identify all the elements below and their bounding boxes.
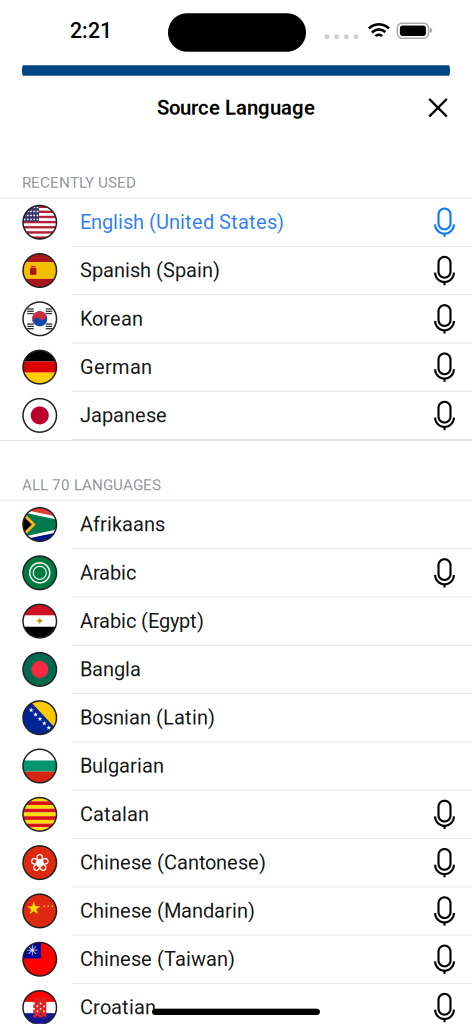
staticText: ✳ xyxy=(26,942,38,959)
staticText: RECENTLY USED xyxy=(22,174,136,192)
button[interactable]: Arabic xyxy=(0,549,472,597)
button[interactable]: ▓ xyxy=(0,984,472,1024)
staticText: Chinese (Taiwan) xyxy=(80,947,235,971)
staticText: Spanish (Spain) xyxy=(80,259,220,282)
button[interactable]: English (United States) xyxy=(0,199,472,247)
staticText: ✦ xyxy=(35,615,44,627)
button[interactable]: Close xyxy=(416,86,460,130)
staticText: Arabic xyxy=(80,561,136,584)
staticText: 2:21 xyxy=(70,18,112,43)
button[interactable]: German xyxy=(0,343,472,392)
staticText: Bosnian (Latin) xyxy=(80,706,215,729)
staticText: Chinese (Mandarin) xyxy=(80,899,255,923)
staticText: Catalan xyxy=(80,803,149,826)
staticText: ⋯ xyxy=(42,899,54,913)
button[interactable]: Catalan xyxy=(0,791,472,839)
staticText: German xyxy=(80,355,152,379)
button[interactable]: Bangla xyxy=(0,646,472,694)
staticText: Source Language xyxy=(157,96,315,120)
staticText: Bulgarian xyxy=(80,754,164,778)
staticText: ★ xyxy=(26,898,42,918)
button[interactable]: Bulgarian xyxy=(0,742,472,791)
button[interactable]: Afrikaans xyxy=(0,501,472,549)
staticText: Japanese xyxy=(80,404,167,427)
staticText: Croatian xyxy=(80,996,156,1019)
button[interactable]: Bosnian (Latin) xyxy=(0,694,472,742)
button[interactable]: Korean xyxy=(0,295,472,343)
staticText: English (United States) xyxy=(80,210,284,234)
staticText: Arabic (Egypt) xyxy=(80,609,204,633)
button[interactable]: ✳ xyxy=(0,936,472,984)
button[interactable]: Japanese xyxy=(0,392,472,440)
button[interactable]: ✦ xyxy=(0,597,472,646)
staticText: Afrikaans xyxy=(80,513,165,536)
staticText: ALL 70 LANGUAGES xyxy=(22,476,161,494)
staticText: Korean xyxy=(80,307,143,330)
staticText: Bangla xyxy=(80,658,141,681)
staticText: ❀ xyxy=(30,849,50,877)
button[interactable]: ★ xyxy=(0,887,472,936)
button[interactable]: Spanish (Spain) xyxy=(0,247,472,295)
staticText: ▓ xyxy=(33,997,46,1018)
staticText: Chinese (Cantonese) xyxy=(80,851,266,874)
button[interactable]: ❀ xyxy=(0,839,472,887)
